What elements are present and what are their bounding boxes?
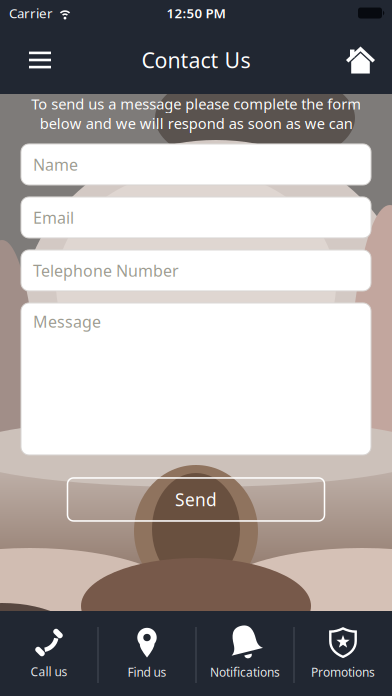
staticText: Promotions — [311, 664, 375, 680]
staticText: Contact Us — [141, 46, 250, 74]
button[interactable]: Call us — [0, 612, 98, 694]
staticText: Notifications — [210, 664, 280, 680]
textField[interactable]: Name — [33, 154, 359, 175]
staticText: 12:50 PM — [166, 4, 225, 22]
button[interactable]: Find us — [98, 612, 196, 694]
button[interactable]: Send — [67, 478, 324, 521]
button[interactable]: Notifications — [196, 612, 294, 694]
button[interactable]: Menu — [25, 47, 55, 73]
staticText: Call us — [30, 663, 67, 679]
staticText: Telephone Number — [33, 260, 179, 281]
staticText: Carrier — [9, 4, 53, 22]
textField[interactable]: Telephone Number — [33, 260, 359, 281]
staticText: Name — [33, 154, 78, 175]
staticText: Find us — [127, 664, 166, 680]
staticText: To send us a message please complete the… — [31, 94, 361, 133]
button[interactable]: Home — [346, 46, 375, 73]
textField[interactable]: Message — [33, 311, 359, 332]
staticText: Email — [33, 207, 74, 228]
staticText: Send — [175, 488, 217, 511]
button[interactable]: Promotions — [294, 612, 392, 694]
textField[interactable]: Email — [33, 207, 359, 228]
staticText: Message — [33, 311, 101, 332]
